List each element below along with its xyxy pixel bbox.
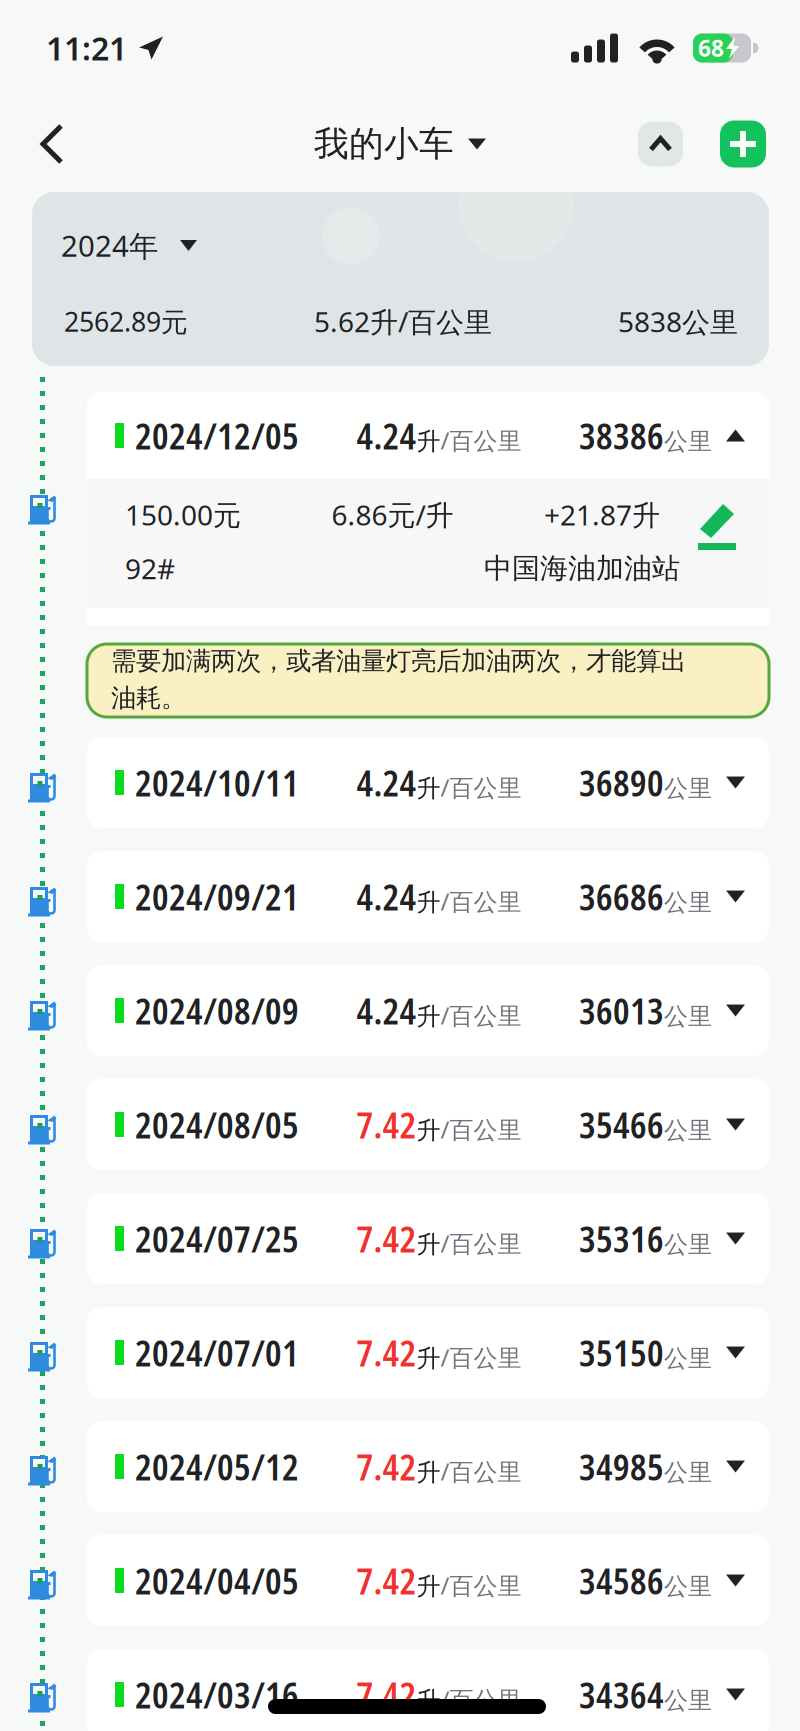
staticText: 2024/10/11 <box>135 758 299 807</box>
staticText: 34586 <box>579 1556 664 1605</box>
staticText: 升 <box>416 1458 440 1487</box>
staticText: 我的小车 <box>314 123 454 165</box>
staticText: 升 <box>416 1686 440 1715</box>
staticText: 公里 <box>664 427 712 456</box>
button[interactable]: Edit <box>683 479 769 560</box>
staticText: 7.42 <box>356 1214 416 1263</box>
staticText: 升 <box>416 1230 440 1259</box>
staticText: 7.42 <box>356 1100 416 1149</box>
staticText: 公里 <box>664 1458 712 1487</box>
staticText: 升 <box>416 1344 440 1373</box>
button[interactable]: 2024/12/05 <box>87 392 769 479</box>
staticText: 公里 <box>664 1116 712 1145</box>
button[interactable]: 2024年 <box>32 192 197 277</box>
staticText: 7.42 <box>356 1556 416 1605</box>
staticText: 2024/07/01 <box>135 1328 299 1377</box>
staticText: 7.42 <box>356 1442 416 1491</box>
staticText: /百公里 <box>440 1455 521 1487</box>
staticText: 68 <box>698 33 724 63</box>
staticText: +21.87升 <box>544 496 660 533</box>
staticText: 公里 <box>664 774 712 803</box>
button[interactable]: 2024/09/21 <box>87 851 769 942</box>
staticText: 2562.89元 <box>64 304 188 339</box>
staticText: 升 <box>416 774 440 803</box>
staticText: /百公里 <box>440 424 521 456</box>
staticText: 11:21 <box>46 27 127 69</box>
staticText: 升 <box>416 1116 440 1145</box>
staticText: 5838公里 <box>618 303 738 340</box>
staticText: 2024/05/12 <box>135 1442 299 1491</box>
staticText: 92# <box>125 550 175 587</box>
staticText: /百公里 <box>440 771 521 803</box>
staticText: 36686 <box>579 872 664 921</box>
staticText: 需要加满两次，或者油量灯亮后加油两次，才能算出 <box>111 645 686 676</box>
staticText: 36013 <box>579 986 664 1035</box>
staticText: 4.24 <box>356 872 416 921</box>
staticText: 2024/07/25 <box>135 1214 299 1263</box>
staticText: /百公里 <box>440 885 521 917</box>
staticText: 4.24 <box>356 758 416 807</box>
staticText: 公里 <box>664 1002 712 1031</box>
staticText: 公里 <box>664 1344 712 1373</box>
staticText: 150.00元 <box>125 496 241 533</box>
button[interactable]: 2024/08/05 <box>87 1079 769 1170</box>
button[interactable]: Add <box>720 120 766 167</box>
staticText: 38386 <box>579 411 664 460</box>
staticText: 升 <box>416 888 440 917</box>
staticText: 2024/09/21 <box>135 872 299 921</box>
staticText: 油耗。 <box>111 682 186 714</box>
staticText: /百公里 <box>440 999 521 1031</box>
staticText: 公里 <box>664 1572 712 1601</box>
staticText: /百公里 <box>440 1569 521 1601</box>
staticText: /百公里 <box>440 1683 521 1715</box>
button[interactable]: 我的小车 <box>314 107 486 181</box>
button[interactable]: Collapse <box>638 121 683 166</box>
staticText: 升 <box>416 1572 440 1601</box>
staticText: 5.62升/百公里 <box>314 303 492 340</box>
button[interactable]: 2024/08/09 <box>87 965 769 1056</box>
staticText: 34364 <box>579 1670 664 1719</box>
staticText: 公里 <box>664 888 712 917</box>
staticText: 35466 <box>579 1100 664 1149</box>
staticText: 2024年 <box>61 226 158 265</box>
staticText: 7.42 <box>356 1328 416 1377</box>
button[interactable]: 2024/10/11 <box>87 737 769 828</box>
button[interactable]: 2024/05/12 <box>87 1421 769 1512</box>
staticText: 4.24 <box>356 986 416 1035</box>
staticText: /百公里 <box>440 1113 521 1145</box>
staticText: 升 <box>416 427 440 456</box>
button[interactable]: 2024/07/01 <box>87 1307 769 1398</box>
staticText: 公里 <box>664 1230 712 1259</box>
staticText: 2024/08/05 <box>135 1100 299 1149</box>
staticText: 35150 <box>579 1328 664 1377</box>
staticText: 2024/04/05 <box>135 1556 299 1605</box>
staticText: /百公里 <box>440 1341 521 1373</box>
button[interactable]: 2024/03/16 <box>87 1649 769 1731</box>
staticText: 4.24 <box>356 411 416 460</box>
staticText: 2024/08/09 <box>135 986 299 1035</box>
button[interactable]: 2024/07/25 <box>87 1193 769 1284</box>
staticText: 公里 <box>664 1686 712 1715</box>
staticText: 中国海油加油站 <box>484 551 680 586</box>
staticText: 2024/12/05 <box>135 411 299 460</box>
button[interactable]: Back <box>0 102 86 186</box>
staticText: 6.86元/升 <box>331 496 453 533</box>
staticText: 35316 <box>579 1214 664 1263</box>
staticText: 36890 <box>579 758 664 807</box>
staticText: 34985 <box>579 1442 664 1491</box>
staticText: /百公里 <box>440 1227 521 1259</box>
staticText: 2024/03/16 <box>135 1670 299 1719</box>
staticText: 升 <box>416 1002 440 1031</box>
button[interactable]: 2024/04/05 <box>87 1535 769 1626</box>
staticText: 7.42 <box>356 1670 416 1719</box>
